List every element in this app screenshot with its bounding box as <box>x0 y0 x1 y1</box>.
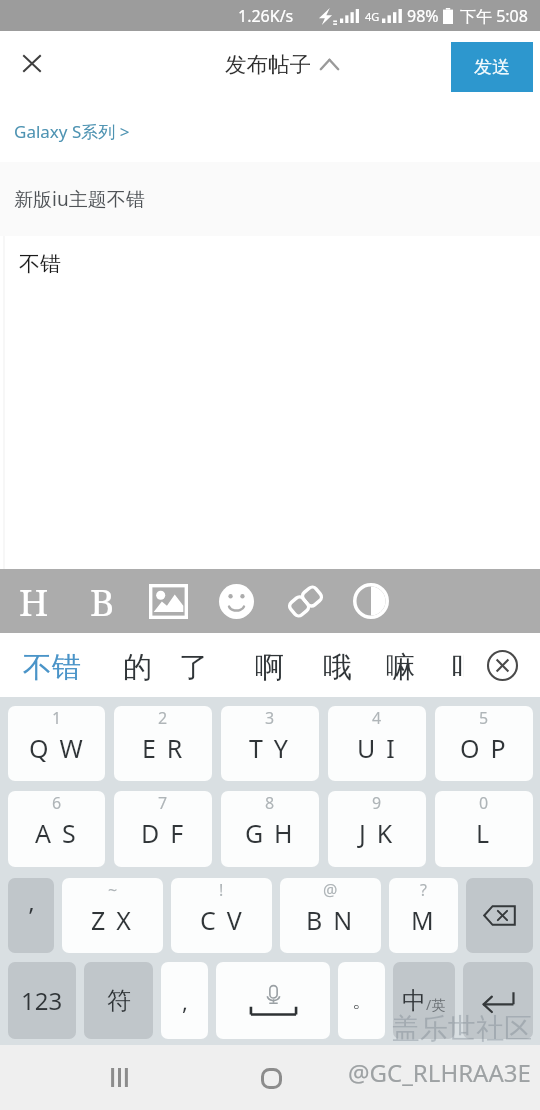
button[interactable]: ~ <box>62 878 163 953</box>
staticText: @ <box>323 879 338 901</box>
staticText: 1 <box>52 707 62 729</box>
button[interactable]: , <box>161 962 208 1039</box>
staticText: L <box>476 816 492 850</box>
button[interactable]: 9 <box>328 791 426 867</box>
button[interactable]: 不错 <box>23 633 113 697</box>
staticText: 9 <box>372 792 382 814</box>
staticText: 符 <box>107 986 131 1016</box>
staticText: ~ <box>108 879 118 901</box>
button[interactable]: Theme <box>345 569 397 633</box>
button[interactable]: ’ <box>8 878 54 953</box>
button[interactable]: @ <box>280 878 381 953</box>
button[interactable]: Close <box>8 42 56 90</box>
staticText: 。 <box>352 988 372 1013</box>
staticText: 4 <box>372 707 382 729</box>
staticText: ? <box>420 879 427 901</box>
button[interactable]: 符 <box>84 962 153 1039</box>
button[interactable]: 吧 <box>452 633 464 697</box>
button[interactable]: 7 <box>114 791 212 867</box>
staticText: T Y <box>249 731 291 765</box>
staticText: 0 <box>479 792 489 814</box>
button[interactable]: Insert link <box>279 569 331 633</box>
button[interactable]: Emoji <box>210 569 262 633</box>
staticText: 7 <box>158 792 168 814</box>
staticText: 了 <box>179 649 208 686</box>
button[interactable]: 。 <box>338 962 385 1039</box>
staticText: 2 <box>158 707 168 729</box>
button[interactable]: 发布帖子 <box>225 51 339 78</box>
button[interactable]: 3 <box>221 706 319 781</box>
staticText: C V <box>200 903 244 937</box>
button[interactable]: 2 <box>114 706 212 781</box>
staticText: M <box>411 903 436 937</box>
button[interactable]: Recents <box>87 1047 151 1107</box>
staticText: Galaxy S系列 > <box>14 120 130 143</box>
staticText: @GC_RLHRAA3E <box>348 1056 531 1089</box>
staticText: J K <box>359 816 395 850</box>
staticText: E R <box>142 731 185 765</box>
staticText: 98% <box>407 5 439 27</box>
staticText: ’ <box>29 899 34 932</box>
staticText: 不错 <box>23 649 81 686</box>
button[interactable]: 不错 <box>0 236 540 569</box>
staticText: 啊 <box>255 649 284 686</box>
staticText: 下午 5:08 <box>460 5 528 27</box>
button[interactable]: Space <box>216 962 330 1039</box>
staticText: 哦 <box>323 649 352 686</box>
button[interactable]: 1 <box>8 706 105 781</box>
button[interactable]: 啊 <box>255 633 285 697</box>
staticText: U I <box>357 731 397 765</box>
button[interactable]: Backspace <box>466 878 533 953</box>
staticText: 发送 <box>474 56 510 79</box>
staticText: D F <box>141 816 186 850</box>
staticText: 5 <box>479 707 489 729</box>
button[interactable]: Heading <box>8 569 60 633</box>
staticText: 123 <box>21 984 63 1017</box>
staticText: Q W <box>29 731 85 765</box>
staticText: Z X <box>91 903 134 937</box>
button[interactable]: 5 <box>435 706 533 781</box>
button[interactable]: Home <box>239 1048 303 1108</box>
button[interactable]: 123 <box>8 962 76 1039</box>
button[interactable]: 哦 <box>323 633 353 697</box>
staticText: 发布帖子 <box>225 51 311 78</box>
button[interactable]: 4 <box>328 706 426 781</box>
button[interactable]: 6 <box>8 791 105 867</box>
staticText: , <box>182 986 188 1016</box>
staticText: 的 <box>123 649 152 686</box>
staticText: 不错 <box>19 251 61 277</box>
button[interactable]: Insert image <box>142 569 194 633</box>
staticText: B N <box>306 903 355 937</box>
button[interactable]: 嘛 <box>386 633 416 697</box>
staticText: 新版iu主题不错 <box>14 186 145 212</box>
button[interactable]: 了 <box>179 633 209 697</box>
staticText: /英 <box>426 995 446 1014</box>
button[interactable]: 发送 <box>451 42 533 92</box>
staticText: 3 <box>265 707 275 729</box>
staticText: 8 <box>265 792 275 814</box>
staticText: B <box>90 576 115 626</box>
staticText: 吧 <box>452 649 464 686</box>
button[interactable]: Hide keyboard <box>464 633 540 697</box>
button[interactable]: Galaxy S系列 > <box>0 100 540 162</box>
staticText: 6 <box>52 792 62 814</box>
button[interactable]: Bold <box>76 569 128 633</box>
staticText: 中 <box>402 986 426 1016</box>
staticText: O P <box>460 731 508 765</box>
button[interactable]: ? <box>389 878 458 953</box>
button[interactable]: 的 <box>123 633 153 697</box>
button[interactable]: ! <box>171 878 272 953</box>
staticText: 盖乐世社区 <box>392 1011 532 1046</box>
button[interactable]: 8 <box>221 791 319 867</box>
staticText: 1.26K/s <box>238 5 294 27</box>
button[interactable]: Enter <box>463 962 533 1039</box>
staticText: 嘛 <box>386 649 415 686</box>
button[interactable]: 中 <box>393 962 455 1039</box>
staticText: 4G <box>365 9 380 24</box>
staticText: A S <box>35 816 78 850</box>
button[interactable]: 0 <box>435 791 533 867</box>
staticText: H <box>19 576 49 626</box>
staticText: ! <box>219 879 224 901</box>
staticText: G H <box>245 816 295 850</box>
button[interactable]: 新版iu主题不错 <box>0 162 540 236</box>
